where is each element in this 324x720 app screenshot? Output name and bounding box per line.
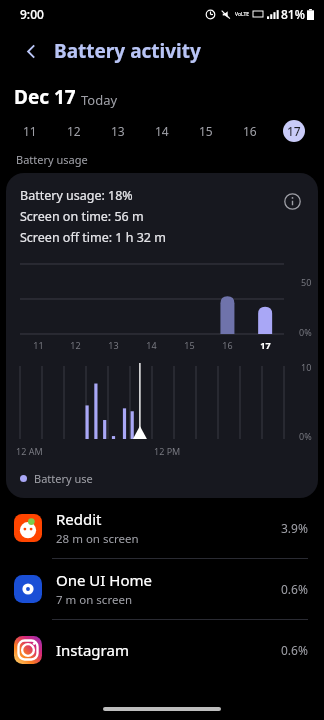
staticText: 11	[23, 123, 37, 139]
staticText: 0.6%	[281, 581, 308, 597]
staticText: Dec 17	[14, 84, 76, 110]
staticText: Screen off time: 1 h 32 m	[20, 229, 166, 246]
staticText: One UI Home	[56, 570, 152, 590]
staticText: 12	[70, 339, 81, 351]
staticText: 16	[222, 339, 233, 351]
staticText: VoLTE	[235, 11, 250, 18]
staticText: 12	[67, 123, 81, 139]
staticText: Battery usage	[16, 152, 88, 167]
staticText: 0%	[299, 430, 312, 442]
staticText: 3.9%	[281, 520, 308, 536]
staticText: 81%	[281, 6, 305, 22]
button[interactable]: 16	[228, 114, 272, 148]
staticText: 14	[146, 339, 157, 351]
staticText: 28 m on screen	[56, 531, 139, 547]
button[interactable]: 15	[184, 114, 228, 148]
staticText: 10	[301, 361, 312, 373]
button[interactable]: 11	[8, 114, 52, 148]
button[interactable]: 13	[96, 114, 140, 148]
button[interactable]: One UI Home	[0, 559, 324, 620]
staticText: Battery use	[34, 471, 93, 486]
staticText: Instagram	[56, 640, 129, 660]
staticText: 13	[111, 123, 125, 139]
button[interactable]: Instagram	[0, 620, 324, 680]
staticText: 13	[108, 339, 119, 351]
staticText: 17	[287, 123, 301, 139]
button[interactable]: Reddit	[0, 498, 324, 559]
staticText: 11	[33, 339, 44, 351]
staticText: 15	[199, 123, 213, 139]
staticText: 0.6%	[281, 642, 308, 658]
staticText: 14	[155, 123, 169, 139]
staticText: Battery usage: 18%	[20, 187, 133, 204]
staticText: 15	[184, 339, 195, 351]
button[interactable]: Back	[14, 34, 48, 68]
button[interactable]: 14	[140, 114, 184, 148]
button[interactable]: Information	[278, 187, 306, 215]
staticText: 16	[243, 123, 257, 139]
staticText: Today	[81, 91, 118, 109]
staticText: 0%	[299, 326, 312, 338]
staticText: 9:00	[20, 6, 44, 22]
staticText: Reddit	[56, 509, 102, 529]
button[interactable]: 12	[52, 114, 96, 148]
button[interactable]: 17	[272, 114, 316, 148]
staticText: Screen on time: 56 m	[20, 208, 144, 225]
staticText: 7 m on screen	[56, 592, 132, 608]
staticText: 12 AM	[16, 445, 43, 457]
staticText: Battery activity	[54, 38, 201, 64]
staticText: 12 PM	[154, 445, 181, 457]
staticText: 50	[301, 276, 312, 288]
staticText: 17	[260, 339, 271, 351]
